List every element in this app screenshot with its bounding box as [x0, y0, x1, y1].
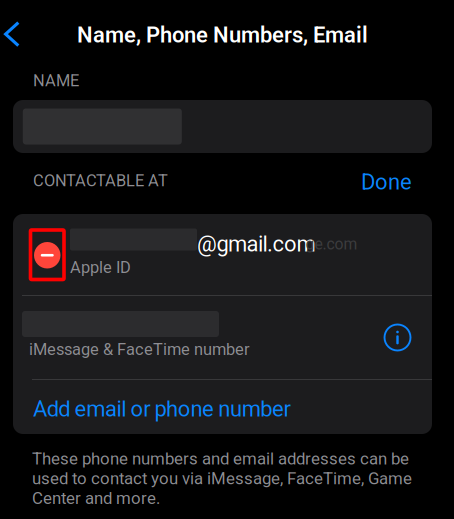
- button[interactable]: Done: [357, 153, 416, 202]
- staticText: @gmail.com: [197, 231, 315, 257]
- staticText: Apple ID: [70, 258, 131, 277]
- staticText: These phone numbers and email addresses …: [32, 449, 412, 508]
- staticText: Name, Phone Numbers, Email: [77, 22, 368, 48]
- button[interactable]: More info: [384, 296, 411, 351]
- staticText: NAME: [33, 71, 79, 90]
- staticText: CONTACTABLE AT: [33, 171, 168, 190]
- staticText: Add email or phone number: [33, 396, 291, 422]
- button[interactable]: Back: [0, 0, 34, 59]
- staticText: ge.com: [305, 235, 357, 253]
- staticText: Done: [361, 169, 412, 195]
- staticText: iMessage & FaceTime number: [29, 340, 250, 359]
- button[interactable]: Add email or phone number: [13, 380, 432, 434]
